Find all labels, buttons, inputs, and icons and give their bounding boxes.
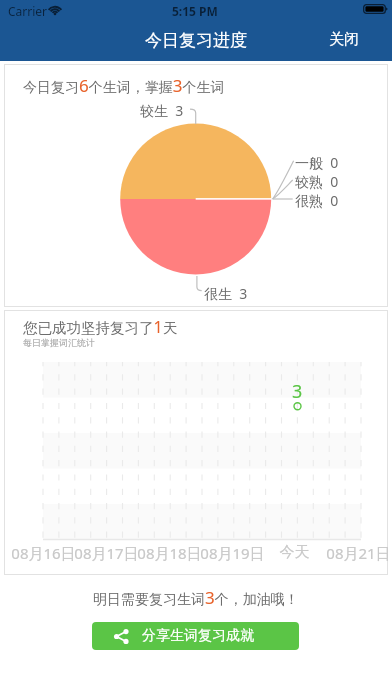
- staticText: 很生 3: [204, 284, 248, 303]
- staticText: 今日复习6个生词，掌握3个生词: [23, 74, 225, 97]
- staticText: 分享生词复习成就: [142, 627, 254, 645]
- staticText: 关闭: [329, 30, 359, 49]
- staticText: 3: [292, 379, 303, 404]
- staticText: 较生 3: [140, 101, 184, 120]
- staticText: 今天: [263, 543, 326, 562]
- staticText: 今日复习进度: [145, 30, 247, 51]
- staticText: 每日掌握词汇统计: [23, 337, 95, 348]
- staticText: 您已成功坚持复习了1天: [23, 316, 178, 338]
- staticText: 5:15 PM: [172, 3, 218, 19]
- staticText: 08月16日: [11, 543, 74, 563]
- button[interactable]: 分享生词复习成就: [92, 622, 299, 650]
- staticText: 明日需要复习生词3个，加油哦！: [93, 586, 299, 609]
- staticText: Carrier: [8, 3, 48, 19]
- staticText: 08月19日: [200, 543, 263, 563]
- staticText: 很熟 0: [295, 191, 339, 210]
- staticText: 08月21日: [326, 543, 389, 563]
- button[interactable]: 关闭: [313, 22, 392, 57]
- staticText: 一般 0: [295, 153, 339, 172]
- staticText: 08月18日: [137, 543, 200, 563]
- staticText: 较熟 0: [295, 172, 339, 191]
- staticText: 08月17日: [74, 543, 137, 563]
